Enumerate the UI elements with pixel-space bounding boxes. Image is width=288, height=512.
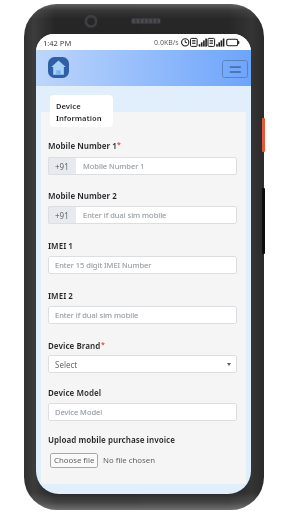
staticText: No file chosen: [103, 455, 156, 466]
button[interactable]: Home: [48, 57, 69, 78]
staticText: Device Model: [55, 407, 103, 417]
staticText: +91: [55, 210, 69, 221]
staticText: Choose file: [54, 455, 95, 466]
button[interactable]: Enter 15 digit IMEI Number: [48, 256, 237, 274]
staticText: Upload mobile purchase invoice: [48, 434, 176, 445]
button[interactable]: Device: [50, 95, 113, 127]
button[interactable]: Select: [48, 355, 237, 373]
staticText: Device Brand: [48, 340, 101, 351]
staticText: Enter if dual sim mobile: [83, 210, 167, 220]
button[interactable]: +91: [48, 157, 237, 175]
staticText: 0.0KB/s: [154, 38, 179, 48]
staticText: Mobile Number 1: [48, 140, 117, 151]
staticText: *: [117, 140, 121, 150]
button[interactable]: Enter if dual sim mobile: [48, 306, 237, 324]
staticText: Enter if dual sim mobile: [55, 310, 139, 320]
staticText: Enter 15 digit IMEI Number: [55, 260, 152, 270]
staticText: +91: [55, 161, 69, 172]
staticText: Device Model: [48, 387, 102, 398]
staticText: IMEI 2: [48, 290, 73, 301]
staticText: Mobile Number 1: [83, 161, 145, 171]
button[interactable]: +91: [48, 206, 237, 224]
button[interactable]: Menu: [222, 60, 248, 78]
button[interactable]: Device Model: [48, 403, 237, 421]
staticText: *: [101, 340, 105, 350]
staticText: Device: [56, 101, 81, 111]
staticText: IMEI 1: [48, 240, 73, 251]
button[interactable]: Choose file: [50, 453, 98, 468]
staticText: 1:42 PM: [43, 38, 72, 48]
staticText: Select: [55, 359, 78, 370]
staticText: Mobile Number 2: [48, 190, 117, 201]
staticText: Information: [56, 113, 102, 123]
